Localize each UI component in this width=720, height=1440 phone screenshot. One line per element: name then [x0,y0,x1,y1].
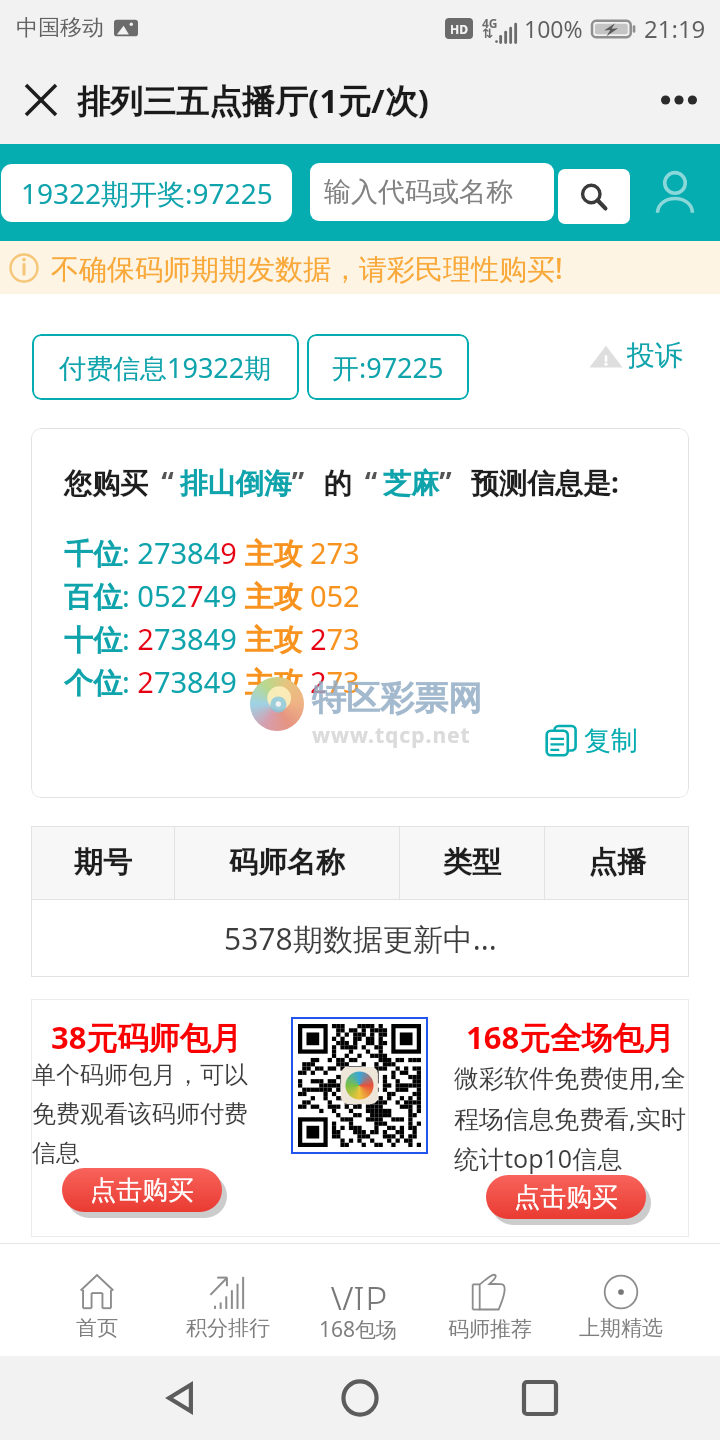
staticText: 个位: 273849 主攻 273 [64,662,360,705]
button[interactable]: 开:97225 [307,334,469,400]
button[interactable]: 复制 [545,724,638,758]
button[interactable]: 付费信息19322期 [32,334,299,400]
staticText: 您购买 “排山倒海” 的 “芝麻” 预测信息是: [64,463,619,501]
staticText: 不确保码师期期发数据，请彩民理性购买! [51,249,563,287]
staticText: 十位: 273849 主攻 273 [64,619,360,662]
staticText: 积分排行 [186,1315,270,1341]
staticText: 开:97225 [332,349,444,386]
staticText: 点击购买 [514,1181,618,1214]
staticText: 中国移动 [16,14,104,42]
staticText: HD [450,21,468,37]
button[interactable]: 点击购买 [486,1175,646,1219]
staticText: 复制 [584,724,638,758]
staticText: 付费信息19322期 [59,349,272,386]
staticText: 点击购买 [90,1174,194,1207]
staticText: 168元全场包月 [466,1016,675,1058]
button[interactable]: 投诉 [588,338,683,373]
staticText: 21:19 [644,12,706,45]
staticText: 点播 [588,844,646,881]
staticText: 上期精选 [579,1315,663,1341]
staticText: 类型 [443,844,501,881]
staticText: 100% [524,13,583,44]
staticText: 千位: 273849 主攻 273 [64,533,360,576]
button[interactable]: 首页 [32,1244,162,1356]
staticText: 特区彩票网 [312,677,482,720]
staticText: 5378期数据更新中... [224,918,497,959]
button[interactable]: VIP [293,1244,424,1356]
button[interactable]: 输入代码或名称 [310,163,554,221]
staticText: 投诉 [627,338,683,373]
staticText: 单个码师包月，可以免费观看该码师付费信息 [32,1060,260,1168]
button[interactable]: Account [630,144,720,241]
button[interactable]: 码师推荐 [424,1244,555,1356]
staticText: www.tqcp.net [312,721,471,750]
button[interactable]: Close [12,71,70,129]
staticText: 排列三五点播厅(1元/次) [77,78,429,123]
staticText: ⇅ [482,26,493,41]
button[interactable]: 上期精选 [555,1244,686,1356]
button[interactable]: Home [270,1356,450,1440]
button[interactable]: 积分排行 [162,1244,293,1356]
button[interactable]: 点击购买 [62,1168,222,1212]
staticText: 168包场 [319,1315,398,1344]
button[interactable]: Back [90,1356,270,1440]
staticText: VIP [331,1274,388,1310]
button[interactable]: More options [650,71,708,129]
staticText: 码师名称 [229,844,345,881]
staticText: 4G [482,15,498,31]
staticText: 输入代码或名称 [324,175,513,209]
staticText: 码师推荐 [448,1316,532,1342]
button[interactable]: 19322期开奖:97225 [1,164,292,222]
button[interactable]: Search [558,169,630,224]
staticText: 19322期开奖:97225 [21,174,273,212]
staticText: 期号 [74,844,132,881]
staticText: 首页 [76,1315,118,1341]
button[interactable]: Recents [450,1356,630,1440]
staticText: 百位: 052749 主攻 052 [64,576,360,619]
staticText: 38元码师包月 [51,1016,242,1058]
staticText: 微彩软件免费使用,全程场信息免费看,实时统计top10信息 [454,1060,686,1175]
